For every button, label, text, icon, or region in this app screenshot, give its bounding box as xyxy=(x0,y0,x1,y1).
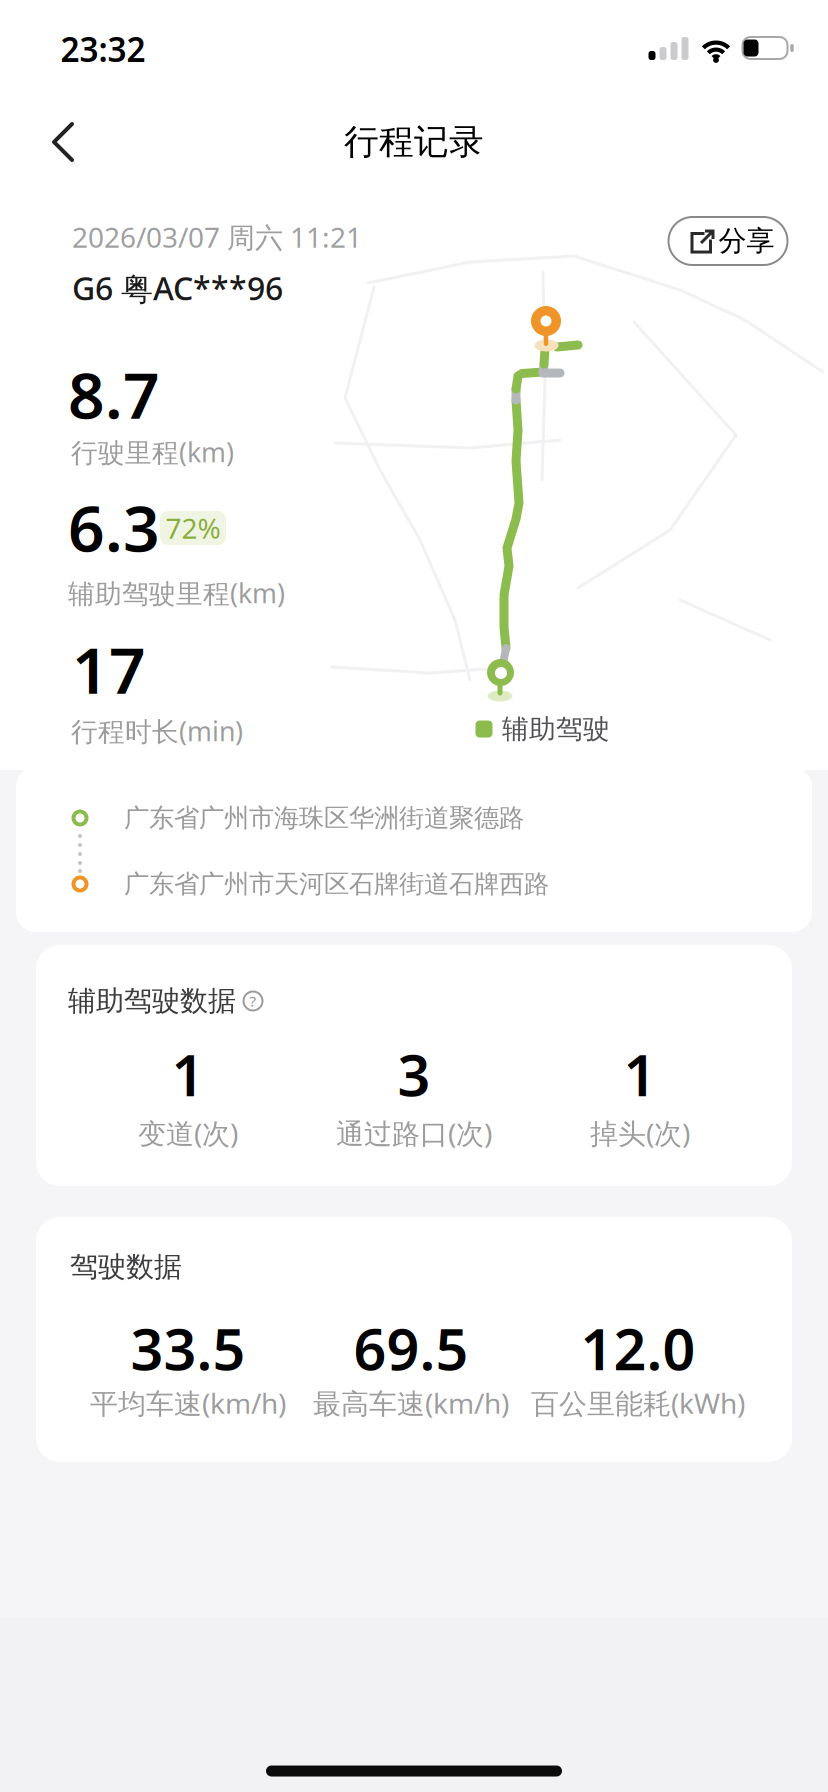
staticText: 12.0 xyxy=(580,1310,695,1386)
staticText: 通过路口(次) xyxy=(336,1114,492,1152)
staticText: 17 xyxy=(72,626,146,711)
staticText: ? xyxy=(249,991,256,1011)
staticText: 分享 xyxy=(718,224,774,258)
staticText: 广东省广州市天河区石牌街道石牌西路 xyxy=(124,868,549,899)
staticText: 8.7 xyxy=(68,351,160,436)
staticText: 平均车速(km/h) xyxy=(90,1384,286,1422)
staticText: 百公里能耗(kWh) xyxy=(531,1384,745,1422)
staticText: 6.3 xyxy=(68,484,160,569)
staticText: 广东省广州市海珠区华洲街道聚德路 xyxy=(124,802,524,833)
button[interactable]: Back xyxy=(41,112,85,172)
staticText: 行程时长(min) xyxy=(71,713,243,749)
staticText: 掉头(次) xyxy=(590,1114,690,1152)
button[interactable]: 辅助驾驶数据说明 xyxy=(242,990,263,1011)
staticText: 行程记录 xyxy=(344,121,484,163)
staticText: 辅助驾驶 xyxy=(502,713,610,745)
staticText: 变道(次) xyxy=(138,1114,238,1152)
staticText: 最高车速(km/h) xyxy=(313,1384,509,1422)
staticText: 行驶里程(km) xyxy=(71,434,234,470)
staticText: 3 xyxy=(397,1036,430,1112)
staticText: 辅助驾驶数据 xyxy=(68,984,236,1018)
staticText: 1 xyxy=(171,1036,204,1112)
staticText: 驾驶数据 xyxy=(70,1250,182,1284)
staticText: 2026/03/07 周六 11:21 xyxy=(72,218,362,256)
staticText: 1 xyxy=(623,1036,656,1112)
staticText: 69.5 xyxy=(353,1310,468,1386)
staticText: 辅助驾驶里程(km) xyxy=(68,575,285,611)
staticText: 72% xyxy=(165,509,220,547)
staticText: 23:32 xyxy=(60,27,145,71)
staticText: 33.5 xyxy=(130,1310,245,1386)
staticText: G6 粤AC***96 xyxy=(72,267,283,309)
button[interactable]: 分享 xyxy=(667,216,788,266)
